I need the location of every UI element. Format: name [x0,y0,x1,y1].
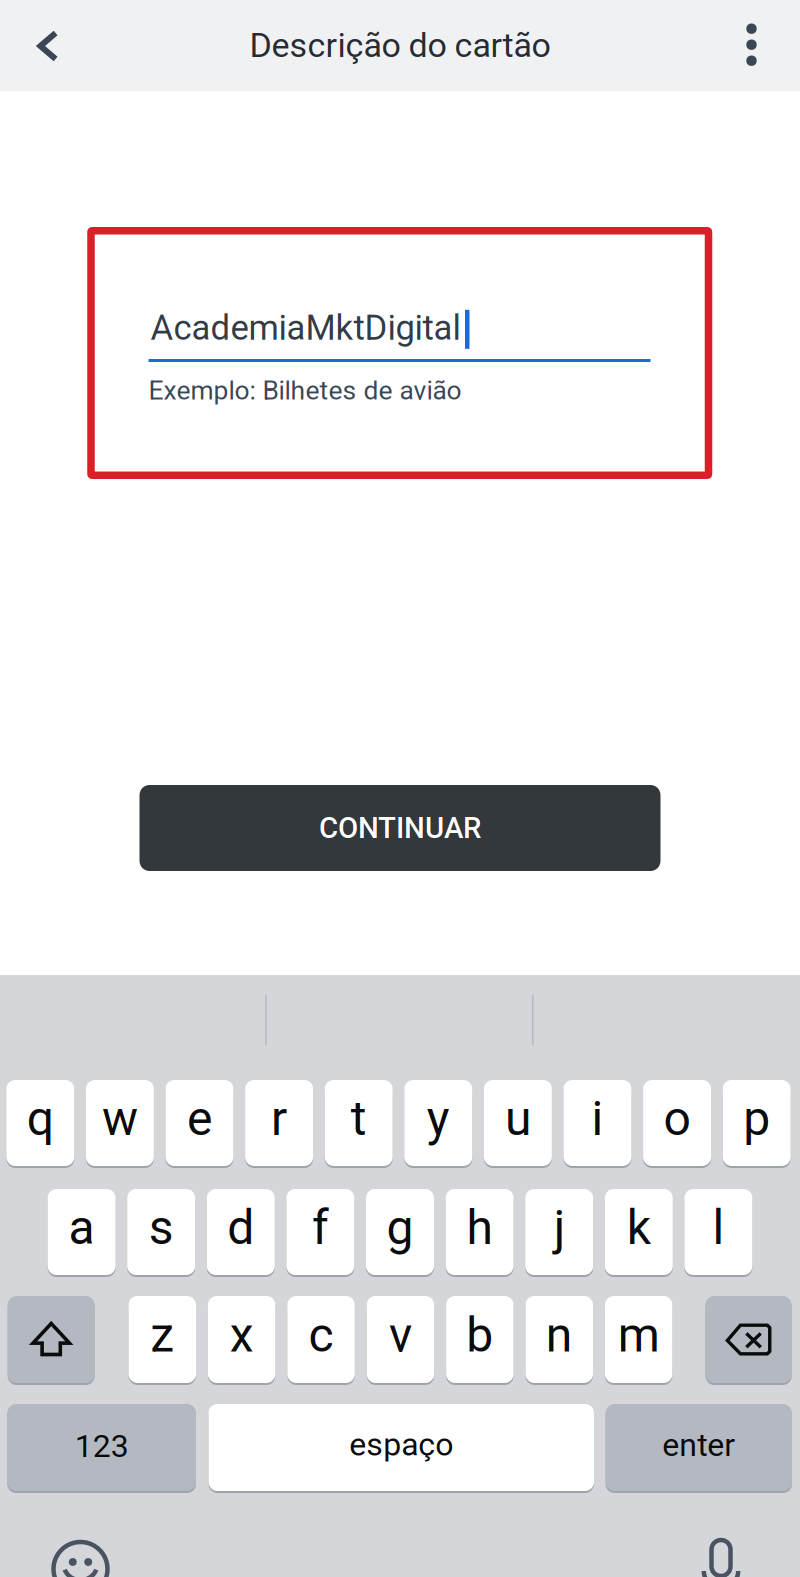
button[interactable]: t [325,1079,393,1167]
staticText: w [102,1090,138,1147]
button[interactable]: x [208,1295,275,1384]
button[interactable]: s [127,1188,195,1276]
staticText: q [27,1090,54,1147]
button[interactable]: f [286,1188,354,1276]
staticText: h [467,1199,493,1256]
staticText: p [743,1090,770,1147]
staticText: z [150,1307,174,1363]
staticText: g [386,1199,413,1256]
staticText: v [389,1307,412,1363]
staticText: Exemplo: Bilhetes de avião [148,375,461,406]
button[interactable]: m [605,1295,672,1384]
button[interactable]: z [128,1295,196,1384]
button[interactable]: CONTINUAR [139,785,660,871]
staticText: e [187,1090,212,1147]
button[interactable]: j [525,1188,593,1276]
button[interactable]: q [6,1079,74,1167]
button[interactable]: Shift [8,1295,95,1384]
button[interactable]: Back [0,0,96,91]
staticText: r [271,1090,287,1147]
staticText: espaço [349,1426,453,1463]
staticText: Descrição do cartão [249,26,550,65]
button[interactable]: o [643,1079,711,1167]
button[interactable]: y [404,1079,472,1167]
button[interactable]: u [484,1079,552,1167]
staticText: AcademiaMktDigital [150,308,460,348]
button[interactable]: n [525,1295,593,1384]
button[interactable]: enter [606,1403,792,1492]
button[interactable]: w [86,1079,154,1167]
button[interactable]: g [366,1188,434,1276]
button[interactable]: More options [703,0,800,91]
button[interactable]: Backspace [705,1295,792,1384]
staticText: l [712,1199,724,1256]
button[interactable]: i [563,1079,631,1167]
staticText: o [664,1090,691,1147]
staticText: enter [662,1426,735,1464]
staticText: d [227,1199,254,1256]
staticText: x [230,1307,254,1363]
staticText: s [149,1199,174,1256]
staticText: a [69,1199,95,1256]
staticText: j [554,1199,565,1256]
button[interactable]: 123 [7,1403,196,1492]
button[interactable]: e [165,1079,233,1167]
button[interactable]: espaço [208,1403,594,1492]
button[interactable]: l [684,1188,752,1276]
button[interactable]: d [207,1188,275,1276]
staticText: f [312,1199,329,1256]
button[interactable]: Voice input [699,1540,743,1577]
staticText: i [591,1090,603,1147]
button[interactable]: p [723,1079,791,1167]
button[interactable]: a [48,1188,116,1276]
staticText: CONTINUAR [319,811,481,845]
staticText: k [627,1199,651,1256]
button[interactable]: c [287,1295,355,1384]
button[interactable]: r [245,1079,313,1167]
button[interactable]: v [367,1295,434,1384]
button[interactable]: b [446,1295,514,1384]
staticText: m [618,1307,660,1363]
staticText: c [309,1307,334,1363]
button[interactable]: Emoji [51,1540,109,1577]
staticText: n [546,1307,573,1363]
button[interactable]: h [446,1188,514,1276]
staticText: 123 [75,1427,129,1465]
staticText: t [351,1090,367,1147]
staticText: u [505,1090,531,1147]
button[interactable]: k [605,1188,673,1276]
staticText: b [466,1307,493,1363]
staticText: y [427,1090,450,1147]
